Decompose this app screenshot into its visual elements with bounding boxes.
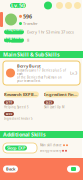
staticText: Sleep EXP <box>7 145 25 151</box>
staticText: 8 <box>27 37 29 43</box>
staticText: Ingredient Finder S <box>4 117 32 120</box>
staticText: your team collect. <box>17 79 41 83</box>
staticText: Additional Skills <box>3 131 46 138</box>
button[interactable]: Back <box>3 165 18 172</box>
staticText: of the Berries that Pokémon on <box>17 76 62 79</box>
staticText: Ingredient Finder M <box>44 92 79 97</box>
staticText: Main Skill & Sub Skills <box>3 51 60 58</box>
staticText: Lv. 50 <box>11 2 25 9</box>
staticText: Ingredients <box>4 35 23 45</box>
button[interactable]: Lv. 50 <box>10 3 26 8</box>
staticText: Energy recovery <box>40 149 61 152</box>
staticText: 596 <box>23 13 32 20</box>
staticText: Frequency <box>4 26 24 37</box>
staticText: Back <box>6 166 15 172</box>
button[interactable]: Toggle <box>67 165 80 172</box>
staticText: Skill Level Up M <box>44 105 64 109</box>
staticText: Lv.10 <box>5 101 12 104</box>
staticText: Transfer <box>23 21 38 26</box>
staticText: Main skill chance <box>40 143 62 147</box>
staticText: Lv.50 <box>5 112 12 116</box>
staticText: Instantly gains 17 Berries plus 5 of eac… <box>17 69 66 76</box>
staticText: Berry Burst <box>17 63 41 69</box>
staticText: Every 1 hr 53 mins 37 secs <box>27 29 74 34</box>
staticText: Lv.25 <box>45 101 52 104</box>
staticText: Helping Speed S <box>4 105 28 109</box>
staticText: Lv.3 <box>70 70 77 76</box>
staticText: Research EXP Bonus <box>4 92 39 97</box>
